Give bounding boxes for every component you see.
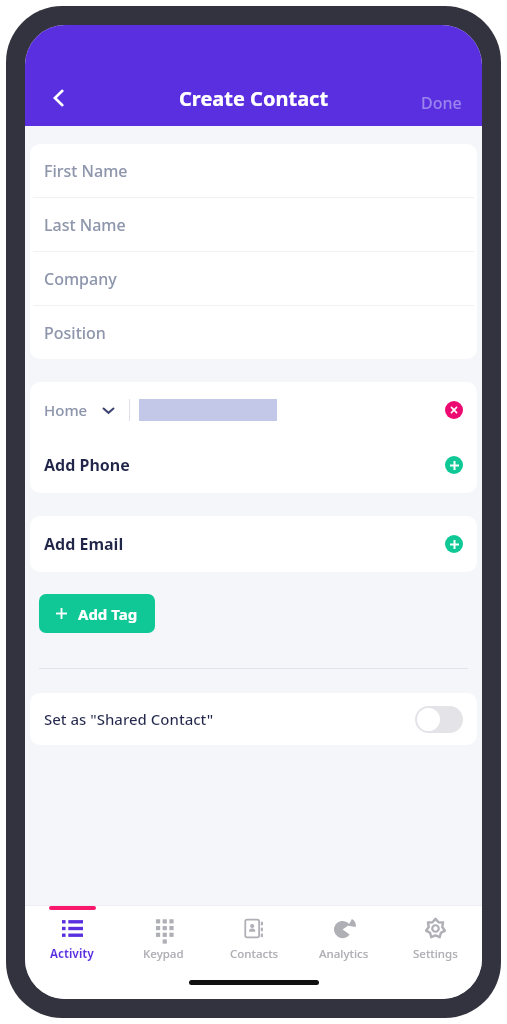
button[interactable]: Keypad: [119, 906, 207, 969]
button[interactable]: Activity: [28, 906, 116, 969]
button[interactable]: Remove phone: [445, 401, 463, 419]
staticText: Set as "Shared Contact": [44, 709, 415, 729]
button[interactable]: Analytics: [300, 906, 388, 969]
staticText: Contacts: [230, 946, 279, 962]
button[interactable]: Add Email: [30, 516, 477, 572]
button[interactable]: Add Tag: [39, 594, 155, 633]
button[interactable]: First Name: [30, 144, 477, 198]
button[interactable]: Contacts: [210, 906, 298, 969]
button[interactable]: Done: [415, 88, 468, 118]
button[interactable]: Home: [44, 400, 115, 420]
staticText: Position: [44, 322, 106, 344]
staticText: Home: [44, 400, 88, 420]
staticText: Last Name: [44, 214, 126, 236]
staticText: Add Tag: [78, 604, 138, 624]
button[interactable]: Last Name: [30, 198, 477, 252]
button[interactable]: Company: [30, 252, 477, 306]
button[interactable]: Back: [37, 76, 81, 120]
button[interactable]: Set as "Shared Contact": [30, 693, 477, 745]
staticText: Activity: [50, 946, 94, 962]
staticText: First Name: [44, 160, 128, 182]
button[interactable]: Add Phone: [30, 437, 477, 493]
staticText: Add Email: [44, 533, 445, 555]
staticText: Create Contact: [179, 85, 329, 112]
button[interactable]: Settings: [391, 906, 479, 969]
staticText: Done: [421, 92, 462, 114]
button[interactable]: Shared contact toggle: [415, 706, 463, 733]
staticText: Analytics: [319, 946, 369, 962]
staticText: Add Phone: [44, 454, 445, 476]
button[interactable]: Position: [30, 306, 477, 359]
staticText: Keypad: [143, 946, 184, 962]
staticText: Settings: [413, 946, 458, 962]
staticText: Company: [44, 268, 117, 290]
